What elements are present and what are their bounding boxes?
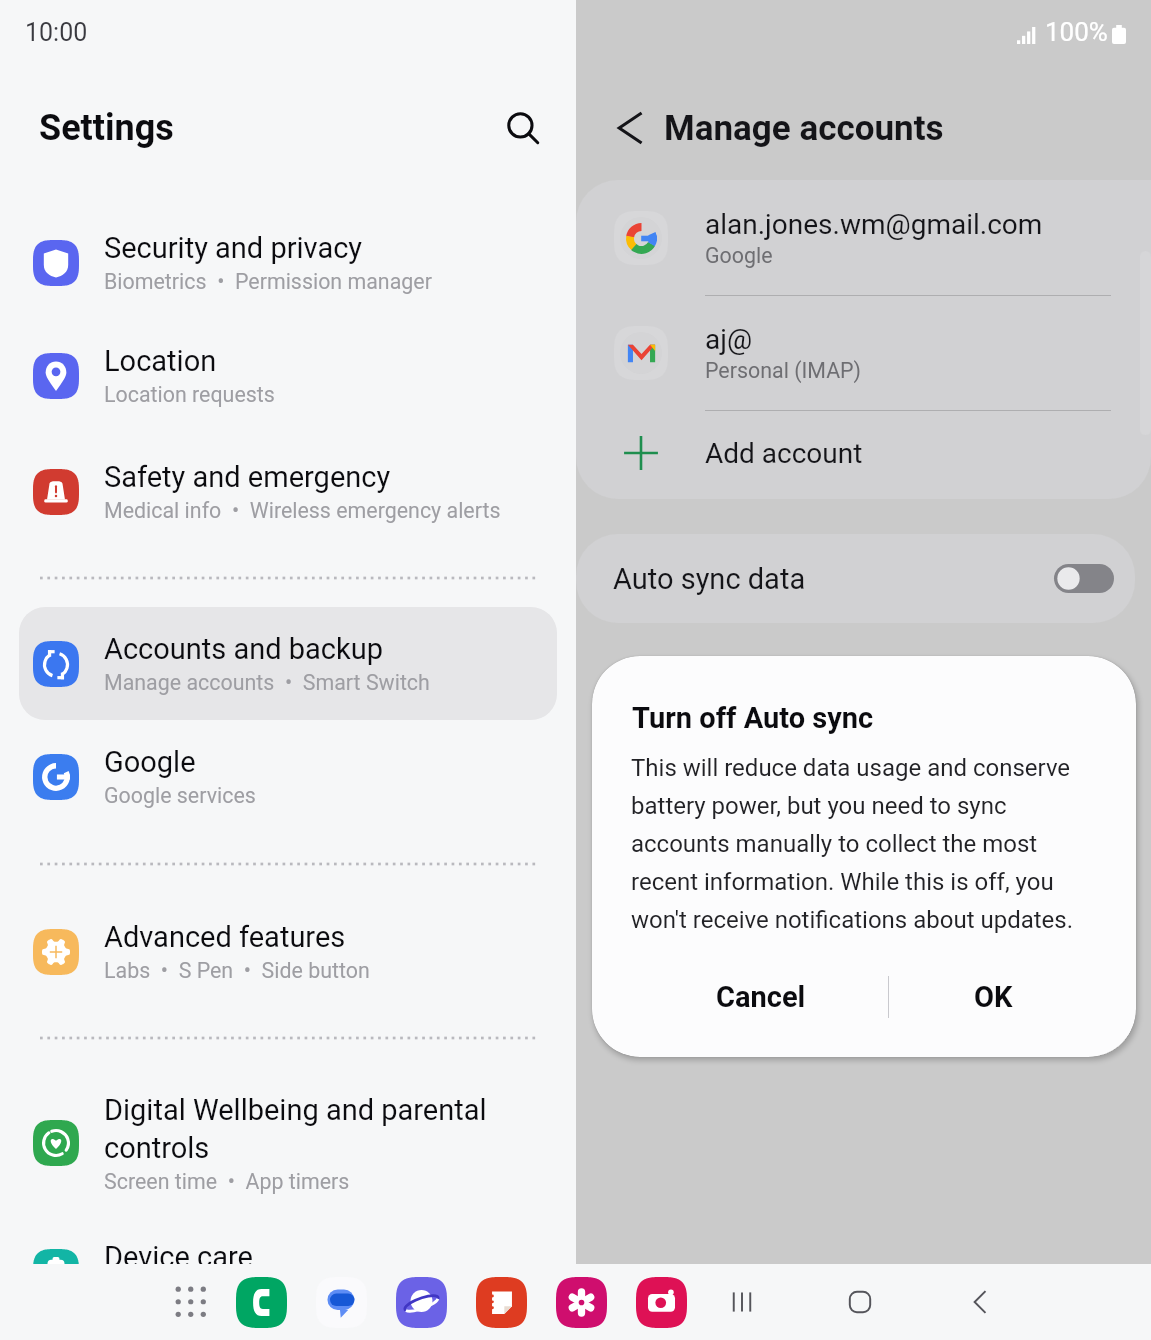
staticText: Google	[705, 243, 773, 268]
button[interactable]: OK	[889, 961, 1097, 1033]
staticText: Auto sync data	[613, 562, 806, 596]
button[interactable]: Device care	[19, 1215, 557, 1328]
button[interactable]: alan.jones.wm@gmail.com	[576, 180, 1151, 295]
staticText: Add account	[705, 437, 863, 470]
button[interactable]: Location	[19, 319, 557, 432]
button[interactable]: Messages	[316, 1277, 367, 1328]
staticText: Manage accounts	[664, 108, 944, 149]
button[interactable]: Safety and emergency	[19, 435, 557, 548]
button[interactable]: Internet	[396, 1277, 447, 1328]
button[interactable]: Navigate up	[606, 102, 658, 154]
staticText: Screen time • App timers	[104, 1169, 350, 1194]
button[interactable]: Camera	[636, 1277, 687, 1328]
staticText: Location requests	[104, 382, 275, 407]
button[interactable]: Auto sync data	[576, 534, 1135, 623]
staticText: Manage accounts • Smart Switch	[104, 670, 430, 695]
staticText: This will reduce data usage and conserve…	[631, 754, 1074, 934]
button[interactable]: Digital Wellbeing and parental controls	[19, 1068, 557, 1218]
staticText: Security and privacy	[104, 231, 363, 265]
staticText: Advanced features	[104, 920, 346, 954]
button[interactable]: Recents	[716, 1276, 768, 1328]
staticText: Labs • S Pen • Side button	[104, 958, 370, 983]
button[interactable]: Accounts and backup	[19, 607, 557, 720]
button[interactable]: Home	[834, 1276, 886, 1328]
staticText: Personal (IMAP)	[705, 358, 862, 383]
staticText: Storage • Memory	[104, 1278, 285, 1303]
staticText: Location	[104, 344, 217, 378]
button[interactable]: Back	[954, 1276, 1006, 1328]
staticText: Accounts and backup	[104, 632, 384, 666]
button[interactable]: Phone	[236, 1277, 287, 1328]
button[interactable]: Cancel	[633, 961, 889, 1033]
staticText: Digital Wellbeing and parental controls	[104, 1093, 487, 1165]
staticText: 100%	[1045, 17, 1108, 47]
staticText: 10:00	[25, 18, 88, 47]
staticText: Cancel	[716, 980, 806, 1014]
staticText: aj@	[705, 323, 753, 356]
button[interactable]: Security and privacy	[19, 206, 557, 319]
staticText: Google services	[104, 783, 256, 808]
button[interactable]: Search	[495, 100, 551, 156]
staticText: Settings	[39, 107, 174, 149]
button[interactable]: Notes	[476, 1277, 527, 1328]
staticText: OK	[974, 980, 1013, 1014]
staticText: Biometrics • Permission manager	[104, 269, 432, 294]
staticText: Google	[104, 745, 196, 779]
button[interactable]: Apps	[163, 1274, 219, 1330]
button[interactable]: aj@	[576, 295, 1151, 410]
button[interactable]: Advanced features	[19, 895, 557, 1008]
staticText: Safety and emergency	[104, 460, 391, 494]
staticText: Turn off Auto sync	[632, 701, 874, 735]
staticText: alan.jones.wm@gmail.com	[705, 208, 1043, 241]
button[interactable]: Add account	[576, 410, 1151, 496]
staticText: Medical info • Wireless emergency alerts	[104, 498, 501, 523]
staticText: Device care	[104, 1240, 253, 1274]
button[interactable]: Google	[19, 720, 557, 833]
button[interactable]: Gallery	[556, 1277, 607, 1328]
